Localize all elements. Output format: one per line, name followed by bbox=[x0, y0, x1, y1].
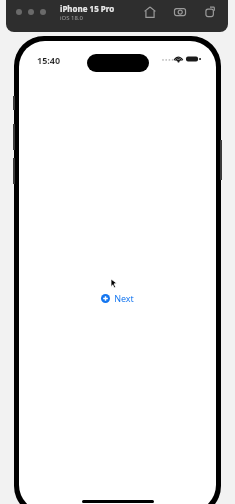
staticText: 15:40 bbox=[37, 54, 61, 66]
staticText: iOS 18.0 bbox=[60, 14, 83, 22]
staticText: Next bbox=[114, 292, 134, 304]
staticText: iPhone 15 Pro bbox=[60, 3, 115, 14]
button[interactable]: Window control bbox=[40, 9, 46, 15]
button[interactable]: Window control bbox=[28, 9, 34, 15]
button[interactable]: Screenshot bbox=[170, 2, 190, 22]
button[interactable]: Next bbox=[101, 292, 134, 304]
button[interactable]: Record bbox=[200, 2, 220, 22]
button[interactable]: Home bbox=[140, 2, 160, 22]
button[interactable]: Window control bbox=[16, 9, 22, 15]
